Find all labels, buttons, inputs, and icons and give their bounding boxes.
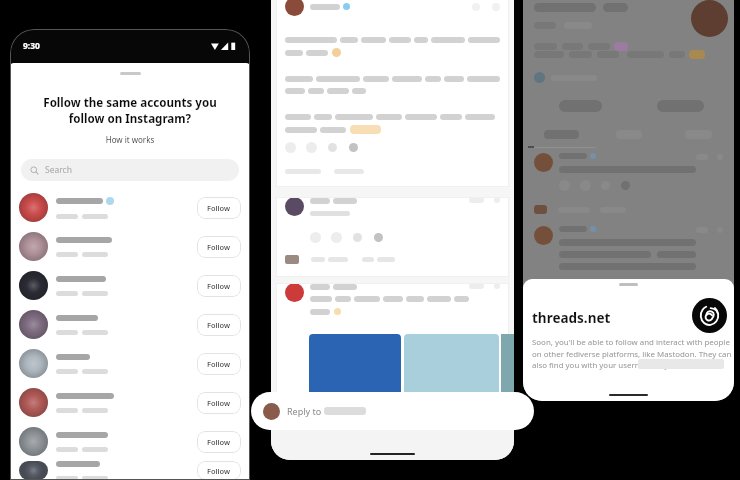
staticText: Follow xyxy=(207,242,231,252)
staticText: Follow xyxy=(207,466,231,476)
staticText: How it works xyxy=(10,134,250,145)
button[interactable]: Follow xyxy=(10,422,250,461)
button[interactable]: Follow xyxy=(197,461,241,480)
button[interactable]: Follow xyxy=(10,461,250,480)
button[interactable]: Follow xyxy=(197,353,241,375)
button[interactable]: Follow xyxy=(197,314,241,336)
button[interactable]: Follow xyxy=(10,383,250,422)
staticText: Follow the same accounts you follow on I… xyxy=(18,95,242,126)
staticText: Follow xyxy=(207,359,231,369)
button[interactable]: Threads xyxy=(692,298,727,333)
button[interactable]: Follow xyxy=(197,392,241,414)
button[interactable]: Follow xyxy=(10,344,250,383)
staticText: Soon, you'll be able to follow and inter… xyxy=(532,337,732,370)
button[interactable]: Follow xyxy=(10,188,250,227)
staticText: Reply to xyxy=(287,405,322,417)
staticText: Search xyxy=(45,164,72,176)
button[interactable] xyxy=(559,100,602,112)
button[interactable]: Follow xyxy=(10,227,250,266)
staticText: threads.net xyxy=(532,309,611,327)
staticText: Follow xyxy=(207,281,231,291)
button[interactable]: Follow xyxy=(197,236,241,258)
button[interactable]: Follow xyxy=(197,197,241,219)
button[interactable] xyxy=(657,100,704,112)
staticText: 9:30 xyxy=(23,40,40,52)
staticText: Follow xyxy=(207,437,231,447)
button[interactable]: Search xyxy=(21,159,239,181)
staticText: Follow xyxy=(207,203,231,213)
button[interactable]: Follow xyxy=(10,266,250,305)
staticText: Follow xyxy=(207,398,231,408)
button[interactable]: Follow xyxy=(197,431,241,453)
button[interactable]: Follow xyxy=(10,305,250,344)
button[interactable]: Follow xyxy=(197,275,241,297)
staticText: Follow xyxy=(207,320,231,330)
button[interactable]: Reply to xyxy=(251,392,534,430)
